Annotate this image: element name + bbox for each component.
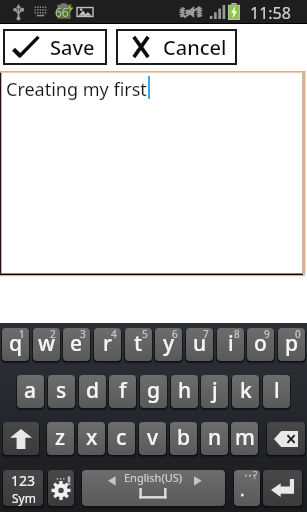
button[interactable]: h [171,375,198,408]
button[interactable]: j [201,375,228,408]
staticText: e [70,329,83,358]
staticText: q [9,329,23,358]
staticText: 3 [80,328,86,341]
staticText: 5 [142,328,148,341]
staticText: 8 [234,328,240,341]
staticText: f [119,376,127,405]
button[interactable]: s [48,375,75,408]
button[interactable]: c [108,422,135,455]
staticText: t [134,329,143,358]
staticText: n [208,423,222,452]
button[interactable]: Period [234,470,260,506]
staticText: 4 [111,328,117,341]
button[interactable]: Settings [48,470,74,506]
button[interactable]: t [125,328,152,361]
button[interactable]: 123 [3,470,43,506]
button[interactable]: r [94,328,121,361]
staticText: 0 [295,328,301,341]
button[interactable]: u [186,328,213,361]
button[interactable]: Save [5,31,105,63]
button[interactable]: f [109,375,136,408]
staticText: b [177,423,191,452]
staticText: v [147,423,159,452]
button[interactable]: x [78,422,105,455]
button[interactable]: y [155,328,182,361]
button[interactable]: Enter [263,470,302,506]
staticText: 6 [172,328,178,341]
button[interactable]: m [231,422,258,455]
button[interactable]: d [79,375,106,408]
staticText: Creating my first [6,77,147,102]
staticText: 66% [55,4,73,21]
staticText: c [116,423,127,452]
staticText: z [55,423,66,452]
staticText: Save [50,34,95,61]
staticText: m [235,423,255,452]
staticText: 1 [19,328,25,341]
staticText: u [193,329,207,358]
staticText: k [240,376,252,405]
staticText: r [103,329,112,358]
staticText: s [56,376,67,405]
button[interactable]: w [33,328,60,361]
staticText: y [163,329,175,358]
button[interactable]: k [232,375,259,408]
button[interactable]: e [63,328,90,361]
button[interactable]: English(US) [82,470,225,506]
button[interactable]: Cancel [118,31,235,63]
button[interactable]: Backspace [267,422,305,455]
staticText: p [285,329,299,358]
button[interactable]: o [247,328,274,361]
staticText: x [86,423,98,452]
button[interactable]: z [47,422,74,455]
staticText: 7 [203,328,209,341]
button[interactable]: v [139,422,166,455]
staticText: 11:58 [250,2,291,24]
button[interactable]: n [201,422,228,455]
staticText: g [147,376,161,405]
staticText: l [274,376,280,405]
staticText: i [228,329,234,358]
staticText: 2 [50,328,56,341]
button[interactable]: q [2,328,29,361]
button[interactable]: l [263,375,290,408]
staticText: English(US) [124,470,183,485]
staticText: a [24,376,37,405]
staticText: j [212,376,218,405]
staticText: 9 [264,328,270,341]
staticText: Cancel [163,34,227,61]
staticText: h [178,376,192,405]
staticText: o [254,329,267,358]
button[interactable]: Shift [3,422,39,455]
staticText: ? [253,470,258,482]
staticText: Sym [12,490,36,506]
button[interactable]: b [170,422,197,455]
button[interactable]: g [140,375,167,408]
staticText: w [38,329,55,358]
button[interactable]: a [17,375,44,408]
staticText: 123 [11,471,36,490]
staticText: d [86,376,100,405]
button[interactable]: p [278,328,305,361]
button[interactable]: i [217,328,244,361]
